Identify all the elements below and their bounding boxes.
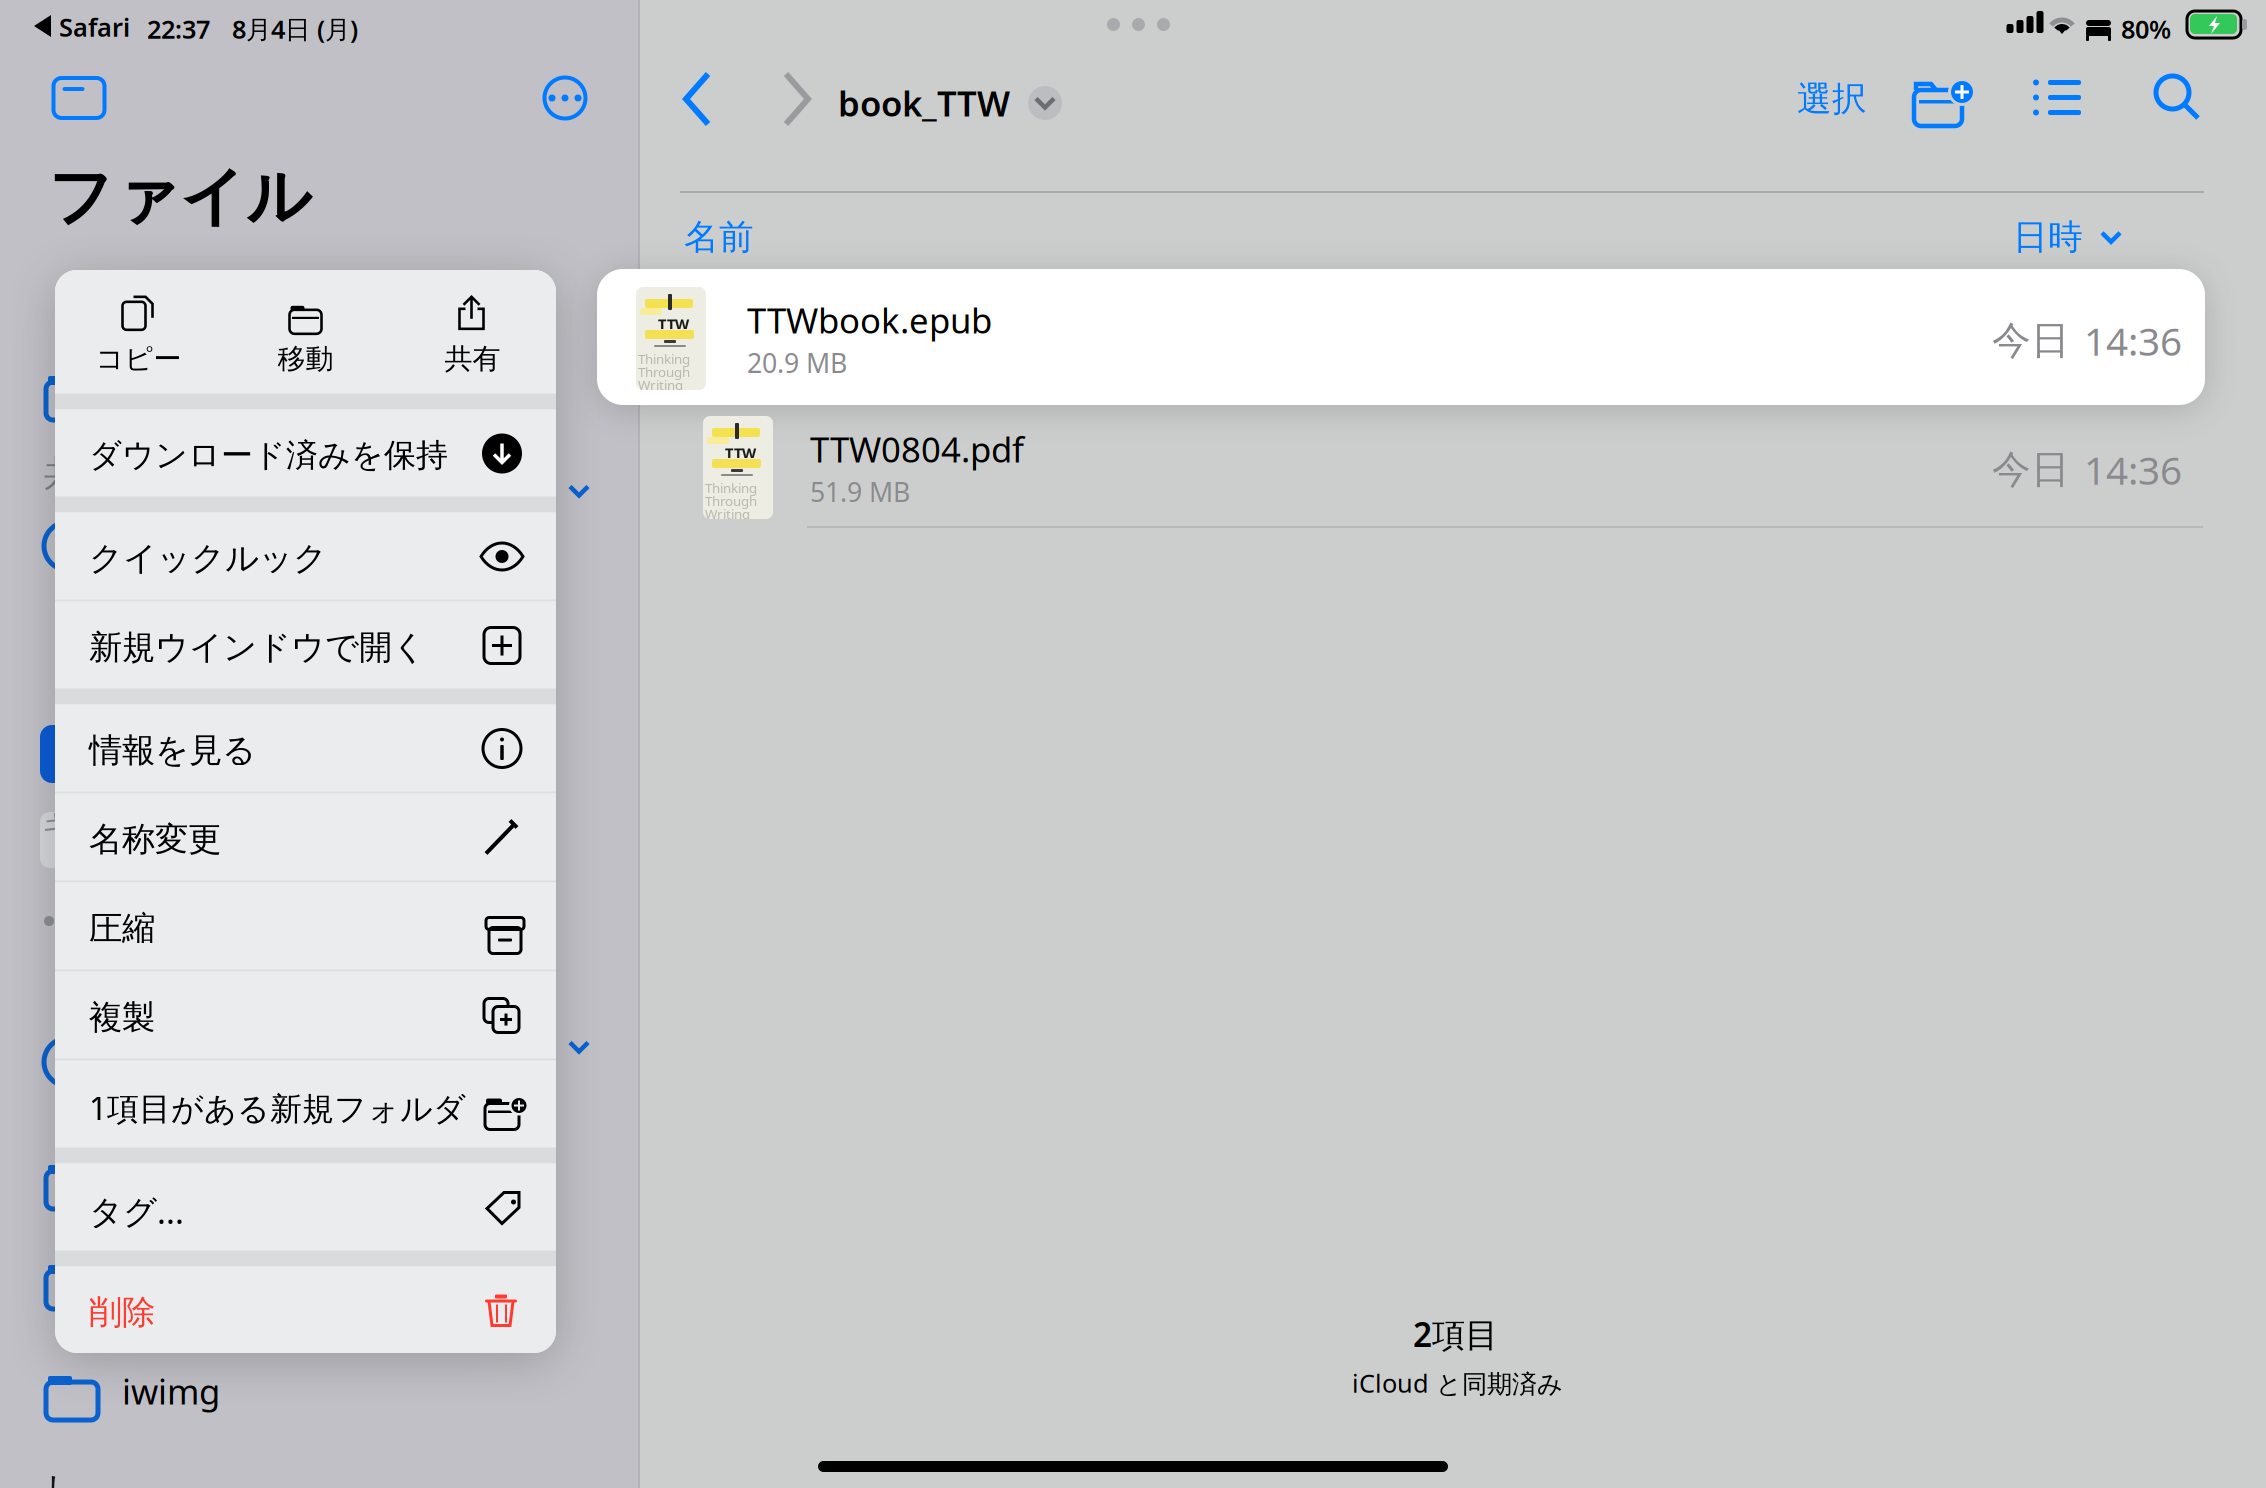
staticText: 共 — [44, 452, 79, 495]
staticText: Thinking — [705, 479, 757, 497]
button[interactable]: セクションを折りたたむ — [566, 482, 592, 500]
button[interactable]: iwimg — [46, 1365, 220, 1417]
staticText: 複製 — [89, 997, 155, 1038]
staticText: iCloud と同期済み — [1352, 1366, 1563, 1400]
staticText: 51.9 MB — [810, 474, 910, 509]
staticText: TTW0804.pdf — [810, 426, 1024, 472]
staticText: Through — [705, 492, 757, 510]
staticText: 22:37 — [147, 12, 210, 46]
button[interactable]: 表示形式 — [2033, 81, 2081, 114]
button[interactable]: 複製 — [55, 971, 556, 1058]
button[interactable]: 新規フォルダ — [1906, 71, 1970, 121]
staticText: 2項目 — [1413, 1312, 1498, 1356]
staticText: Writing — [638, 376, 683, 394]
button[interactable]: 圧縮 — [55, 882, 556, 969]
button[interactable]: ダウンロード済みを保持 — [55, 409, 556, 496]
button[interactable]: TTW — [703, 400, 2266, 530]
staticText: 削除 — [89, 1292, 155, 1333]
staticText: Thinking — [638, 350, 690, 368]
button[interactable]: 戻る — [676, 68, 722, 130]
button[interactable]: サイドバーを表示 — [53, 78, 105, 118]
staticText: 日時 — [2013, 216, 2083, 259]
staticText: ファイル — [48, 158, 312, 237]
staticText: し — [44, 1468, 79, 1488]
button[interactable]: 移動 — [222, 269, 389, 393]
staticText: iwimg — [122, 1368, 220, 1414]
button[interactable]: 共有 — [389, 269, 556, 393]
staticText: タグ... — [89, 1189, 184, 1233]
staticText: 情報を見る — [89, 730, 256, 771]
staticText: Through — [638, 363, 690, 381]
staticText: ギ — [42, 806, 75, 845]
button[interactable]: 日時 — [2013, 216, 2123, 259]
button[interactable]: 新規ウインドウで開く — [55, 601, 556, 688]
button[interactable]: 情報を見る — [55, 704, 556, 791]
staticText: 今日 — [1992, 317, 2070, 364]
button[interactable]: 名前 — [684, 216, 754, 259]
button[interactable]: セクションを折りたたむ — [566, 1038, 592, 1056]
staticText: 移動 — [277, 342, 333, 376]
staticText: クイックルック — [89, 538, 327, 579]
button[interactable]: 選択 — [1796, 79, 1868, 119]
staticText: 80% — [2121, 12, 2171, 46]
button[interactable]: 1項目がある新規フォルダ — [55, 1060, 556, 1147]
staticText: 14:36 — [2084, 315, 2182, 366]
button[interactable]: タグ... — [55, 1163, 556, 1250]
staticText: book_TTW — [838, 80, 1010, 126]
button[interactable]: その他 — [543, 76, 587, 120]
button[interactable]: TTW — [597, 269, 2205, 405]
button[interactable]: 名称変更 — [55, 793, 556, 880]
button[interactable]: 進む — [774, 68, 820, 130]
button[interactable]: コピー — [55, 269, 222, 393]
staticText: TTW — [658, 314, 689, 333]
staticText: Safari — [59, 10, 130, 44]
staticText: 今日 — [1992, 446, 2070, 493]
button[interactable]: 削除 — [55, 1266, 556, 1353]
staticText: 共有 — [444, 342, 500, 376]
staticText: 14:36 — [2084, 444, 2182, 495]
button[interactable]: クイックルック — [55, 512, 556, 599]
staticText: ダウンロード済みを保持 — [89, 436, 448, 475]
staticText: Writing — [705, 505, 750, 523]
button[interactable]: 検索 — [2156, 76, 2200, 120]
staticText: 8月4日 (月) — [232, 12, 358, 46]
staticText: TTWbook.epub — [747, 297, 992, 343]
staticText: TTW — [725, 443, 756, 462]
staticText: 圧縮 — [89, 908, 155, 949]
staticText: 選択 — [1797, 78, 1867, 120]
button[interactable]: book_TTW — [838, 80, 1062, 126]
staticText: 20.9 MB — [747, 345, 847, 380]
staticText: 新規ウインドウで開く — [89, 627, 426, 668]
staticText: 1項目がある新規フォルダ — [89, 1087, 466, 1129]
staticText: コピー — [95, 342, 181, 376]
staticText: 名称変更 — [89, 819, 221, 860]
button[interactable]: Safari — [33, 10, 130, 44]
staticText: 名前 — [684, 216, 754, 259]
